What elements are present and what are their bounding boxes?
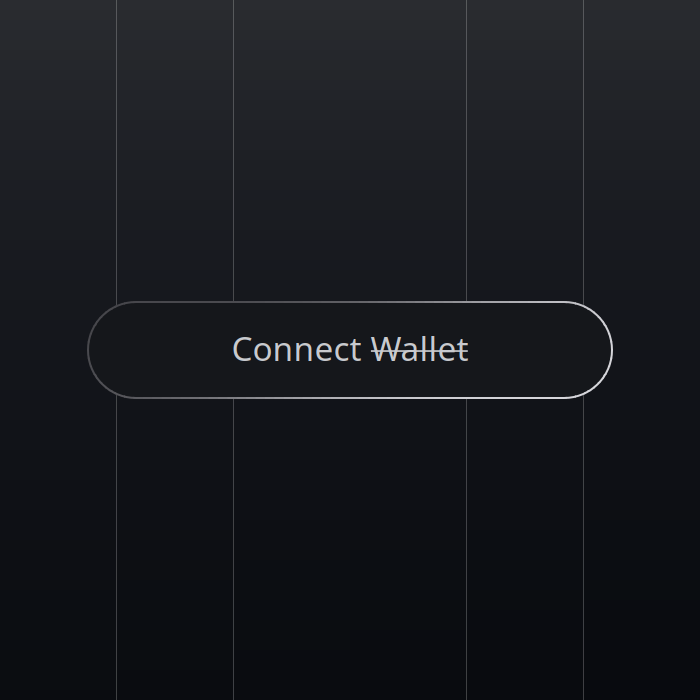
staticText: Connect Wallet <box>231 326 468 370</box>
button[interactable]: Connect Wallet <box>87 301 613 399</box>
